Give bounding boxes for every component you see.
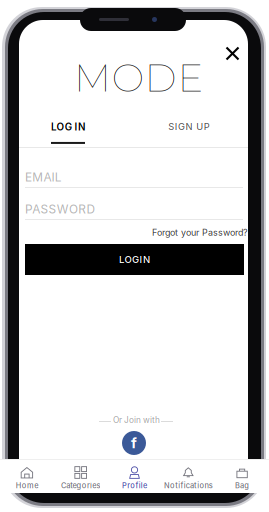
- staticText: Bag: [235, 481, 249, 490]
- button[interactable]: SIGN UP: [161, 121, 217, 143]
- button[interactable]: Bag: [215, 466, 269, 490]
- button[interactable]: Home: [0, 466, 54, 490]
- staticText: LOGIN: [119, 254, 150, 265]
- staticText: f: [131, 434, 137, 452]
- button[interactable]: LOG IN: [40, 121, 96, 144]
- staticText: Home: [16, 481, 38, 490]
- staticText: Categories: [61, 481, 100, 490]
- button[interactable]: Continue with Facebook: [122, 431, 146, 455]
- staticText: MODE: [74, 54, 203, 101]
- button[interactable]: Close: [220, 41, 245, 66]
- staticText: Forgot your Password?: [152, 227, 248, 238]
- button[interactable]: Forgot your Password?: [152, 226, 248, 239]
- staticText: EMAIL: [25, 170, 62, 184]
- staticText: Profile: [122, 481, 147, 490]
- staticText: PASSWORD: [25, 202, 95, 216]
- staticText: Notifications: [164, 481, 213, 490]
- staticText: Or Join with: [113, 415, 160, 425]
- staticText: LOG IN: [51, 121, 85, 133]
- staticText: SIGN UP: [168, 121, 210, 132]
- button[interactable]: Notifications: [161, 466, 215, 490]
- button[interactable]: LOGIN: [25, 244, 244, 275]
- button[interactable]: Categories: [54, 466, 108, 490]
- button[interactable]: Profile: [108, 466, 161, 490]
